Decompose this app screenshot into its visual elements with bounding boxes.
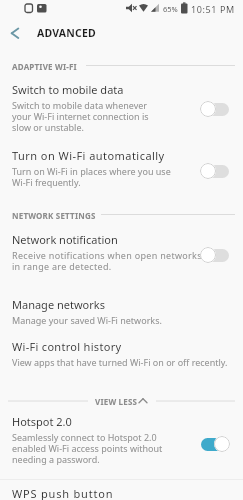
- button[interactable]: Wi-Fi control history: [0, 336, 243, 370]
- button[interactable]: Network notification: [0, 228, 243, 276]
- staticText: VIEW LESS: [95, 396, 138, 407]
- staticText: Hotspot 2.0: [12, 414, 72, 429]
- staticText: ADVANCED: [37, 26, 96, 40]
- staticText: Turn on Wi-Fi automatically: [12, 148, 165, 163]
- staticText: Turn on Wi-Fi in places where you use Wi…: [12, 165, 171, 188]
- button[interactable]: Manage networks: [0, 294, 243, 328]
- button[interactable]: [200, 435, 230, 453]
- staticText: Manage networks: [12, 297, 105, 312]
- staticText: Receive notifications when open networks…: [12, 249, 202, 272]
- button[interactable]: Turn on Wi-Fi automatically: [0, 144, 243, 194]
- staticText: Switch to mobile data whenever your Wi-F…: [12, 99, 149, 133]
- staticText: Wi-Fi control history: [12, 339, 122, 354]
- button[interactable]: [200, 100, 230, 118]
- button[interactable]: [200, 246, 230, 264]
- button[interactable]: Switch to mobile data: [0, 78, 243, 134]
- staticText: NETWORK SETTINGS: [12, 210, 96, 221]
- staticText: Switch to mobile data: [12, 82, 124, 97]
- button[interactable]: Hotspot 2.0: [0, 410, 243, 470]
- staticText: ADAPTIVE WI-FI: [12, 61, 77, 72]
- staticText: Manage your saved Wi-Fi networks.: [12, 314, 162, 326]
- staticText: Seamlessly connect to Hotspot 2.0 enable…: [12, 431, 163, 465]
- button[interactable]: WPS push button: [0, 484, 243, 500]
- staticText: View apps that have turned Wi-Fi on or o…: [12, 356, 228, 368]
- button[interactable]: VIEW LESS: [0, 394, 243, 408]
- staticText: 10:51 PM: [191, 3, 235, 15]
- staticText: Network notification: [12, 232, 118, 247]
- button[interactable]: [200, 162, 230, 180]
- staticText: WPS push button: [12, 486, 114, 500]
- staticText: 65%: [163, 4, 178, 14]
- button[interactable]: [0, 16, 30, 58]
